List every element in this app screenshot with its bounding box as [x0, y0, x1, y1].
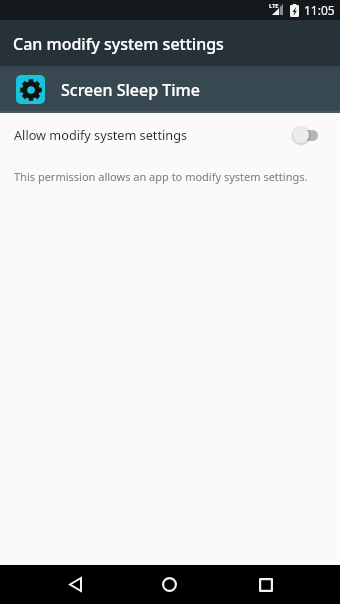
- staticText: Allow modify system settings: [14, 126, 188, 143]
- button[interactable]: Allow modify system settings: [0, 111, 340, 158]
- button[interactable]: Home: [153, 568, 186, 601]
- staticText: LTE: [269, 2, 279, 10]
- button[interactable]: Can modify system settings: [0, 20, 340, 66]
- staticText: Screen Sleep Time: [61, 79, 200, 101]
- staticText: 11:05: [304, 2, 335, 18]
- button[interactable]: Allow modify system settings toggle: [291, 125, 318, 145]
- staticText: This permission allows an app to modify …: [14, 169, 308, 184]
- staticText: Can modify system settings: [13, 33, 224, 55]
- button[interactable]: Screen Sleep Time: [0, 66, 340, 111]
- button[interactable]: Back: [59, 568, 92, 601]
- button[interactable]: Recent apps: [249, 568, 282, 601]
